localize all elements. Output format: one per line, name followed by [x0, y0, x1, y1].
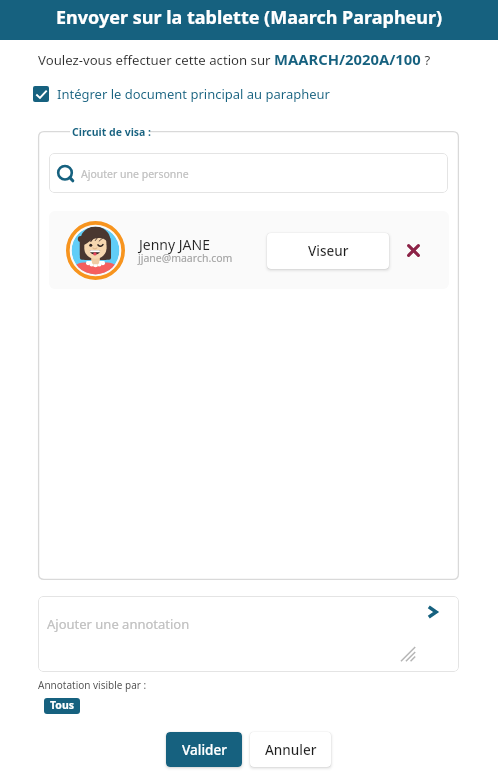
button[interactable]: Envoyer annotation — [418, 599, 446, 627]
staticText: Ajouter une personne — [81, 167, 189, 181]
staticText: jjane@maarch.com — [138, 251, 233, 265]
staticText: Circuit de visa : — [72, 125, 152, 139]
button[interactable]: Ajouter une personne — [49, 153, 448, 193]
staticText: Annuler — [265, 741, 317, 759]
staticText: Intégrer le document principal au paraph… — [57, 85, 330, 103]
staticText: Viseur — [308, 242, 349, 260]
staticText: Voulez-vous effectuer cette action sur — [38, 51, 274, 69]
button[interactable]: Tous — [44, 698, 80, 714]
button[interactable]: Jenny JANE — [49, 211, 449, 289]
staticText: Annotation visible par : — [38, 678, 147, 692]
staticText: Tous — [50, 698, 74, 712]
button[interactable]: Ajouter une annotation — [38, 596, 459, 672]
staticText: ? — [421, 51, 431, 69]
button[interactable]: Annuler — [250, 732, 331, 767]
staticText: Ajouter une annotation — [47, 615, 190, 633]
staticText: MAARCH/2020A/100 — [274, 49, 421, 69]
staticText: Jenny JANE — [139, 235, 210, 254]
button[interactable]: Valider — [166, 732, 242, 767]
button[interactable]: Viseur — [267, 233, 389, 269]
staticText: Envoyer sur la tablette (Maarch Parapheu… — [56, 5, 443, 30]
button[interactable]: Supprimer — [401, 238, 425, 262]
staticText: Valider — [182, 741, 227, 759]
button[interactable]: Intégrer le document principal au paraph… — [33, 85, 330, 103]
